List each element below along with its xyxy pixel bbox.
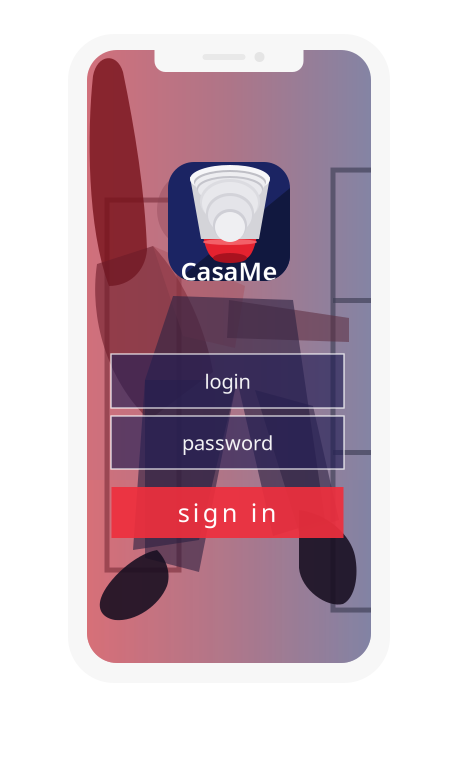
- staticText: n: [261, 496, 277, 529]
- button[interactable]: login: [111, 354, 344, 408]
- staticText: password: [182, 429, 273, 456]
- staticText: login: [204, 368, 250, 394]
- button[interactable]: s: [111, 487, 343, 538]
- staticText: i: [193, 496, 200, 529]
- staticText: s: [178, 496, 190, 529]
- staticText: n: [222, 496, 238, 529]
- staticText: CasaMe: [180, 254, 277, 288]
- staticText: g: [203, 496, 219, 529]
- staticText: i: [251, 496, 258, 529]
- button[interactable]: password: [111, 416, 344, 469]
